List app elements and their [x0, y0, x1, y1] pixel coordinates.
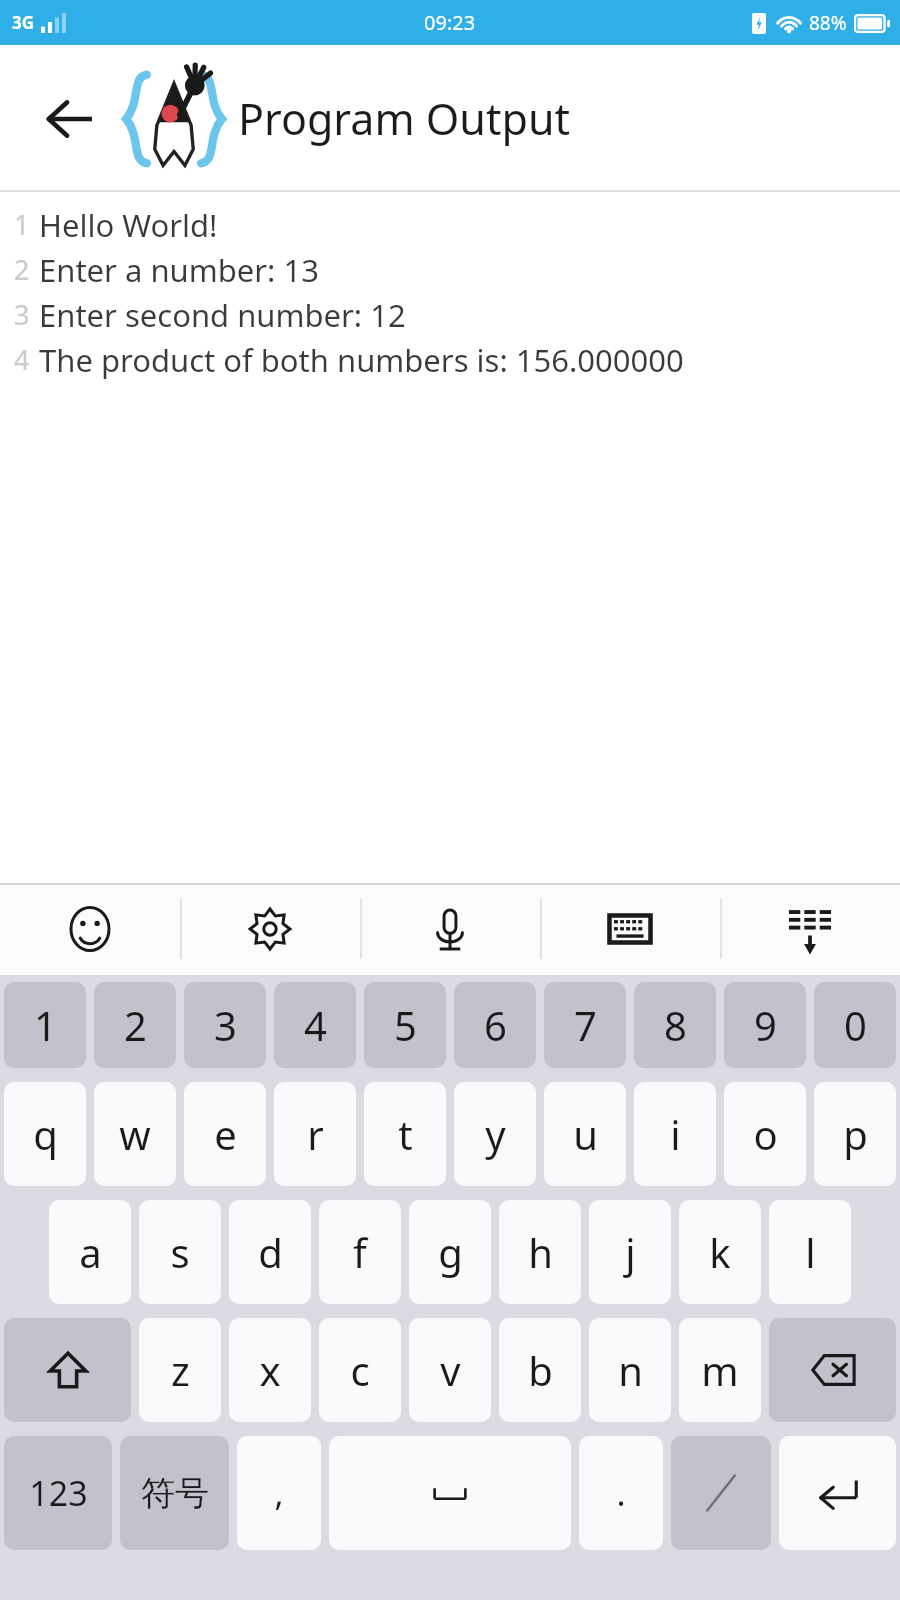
- button[interactable]: i: [634, 1082, 716, 1186]
- button[interactable]: n: [589, 1318, 671, 1422]
- button[interactable]: Backspace: [769, 1318, 896, 1422]
- button[interactable]: Keyboard: [540, 883, 720, 975]
- button[interactable]: Settings: [180, 883, 360, 975]
- staticText: 09:23: [424, 9, 476, 36]
- button[interactable]: Space: [329, 1436, 571, 1550]
- button[interactable]: u: [544, 1082, 626, 1186]
- button[interactable]: Back: [34, 84, 104, 154]
- staticText: i: [670, 1107, 681, 1161]
- button[interactable]: f: [319, 1200, 401, 1304]
- button[interactable]: 6: [454, 982, 536, 1068]
- staticText: f: [353, 1225, 367, 1279]
- staticText: k: [709, 1225, 731, 1279]
- button[interactable]: m: [679, 1318, 761, 1422]
- button[interactable]: 3: [184, 982, 266, 1068]
- staticText: 2: [14, 251, 30, 288]
- staticText: t: [398, 1107, 413, 1161]
- staticText: Hello World!: [39, 204, 218, 246]
- staticText: ,: [274, 1470, 284, 1516]
- button[interactable]: Voice input: [360, 883, 540, 975]
- staticText: u: [573, 1107, 598, 1161]
- button[interactable]: 0: [814, 982, 896, 1068]
- button[interactable]: h: [499, 1200, 581, 1304]
- staticText: r: [307, 1107, 324, 1161]
- staticText: q: [33, 1107, 58, 1161]
- button[interactable]: p: [814, 1082, 896, 1186]
- staticText: c: [350, 1343, 370, 1397]
- staticText: 4: [304, 998, 327, 1052]
- staticText: d: [258, 1225, 283, 1279]
- button[interactable]: 7: [544, 982, 626, 1068]
- staticText: v: [440, 1343, 461, 1397]
- staticText: l: [805, 1225, 816, 1279]
- button[interactable]: .: [579, 1436, 663, 1550]
- button[interactable]: o: [724, 1082, 806, 1186]
- staticText: b: [528, 1343, 553, 1397]
- staticText: g: [438, 1225, 463, 1279]
- staticText: 1: [34, 998, 57, 1052]
- staticText: n: [618, 1343, 643, 1397]
- button[interactable]: 5: [364, 982, 446, 1068]
- staticText: y: [485, 1107, 506, 1161]
- staticText: e: [214, 1107, 237, 1161]
- button[interactable]: y: [454, 1082, 536, 1186]
- button[interactable]: r: [274, 1082, 356, 1186]
- staticText: 8: [664, 998, 687, 1052]
- staticText: Enter a number: 13: [39, 249, 319, 291]
- staticText: 0: [844, 998, 867, 1052]
- button[interactable]: Hide keyboard: [720, 883, 900, 975]
- button[interactable]: t: [364, 1082, 446, 1186]
- staticText: 6: [484, 998, 507, 1052]
- button[interactable]: l: [769, 1200, 851, 1304]
- staticText: m: [701, 1343, 739, 1397]
- staticText: 1: [14, 206, 30, 243]
- button[interactable]: 8: [634, 982, 716, 1068]
- button[interactable]: s: [139, 1200, 221, 1304]
- staticText: Program Output: [238, 89, 571, 148]
- staticText: 88%: [809, 10, 847, 36]
- staticText: w: [119, 1107, 151, 1161]
- staticText: The product of both numbers is: 156.0000…: [39, 339, 684, 381]
- button[interactable]: a: [49, 1200, 131, 1304]
- button[interactable]: 4: [274, 982, 356, 1068]
- button[interactable]: 9: [724, 982, 806, 1068]
- button[interactable]: Enter: [779, 1436, 896, 1550]
- button[interactable]: x: [229, 1318, 311, 1422]
- staticText: 4: [14, 341, 30, 378]
- button[interactable]: c: [319, 1318, 401, 1422]
- staticText: p: [843, 1107, 868, 1161]
- button[interactable]: w: [94, 1082, 176, 1186]
- staticText: Enter second number: 12: [39, 294, 406, 336]
- button[interactable]: g: [409, 1200, 491, 1304]
- button[interactable]: q: [4, 1082, 86, 1186]
- button[interactable]: Emoji: [0, 883, 180, 975]
- staticText: 3: [14, 296, 30, 333]
- button[interactable]: Switch language: [671, 1436, 771, 1550]
- button[interactable]: e: [184, 1082, 266, 1186]
- button[interactable]: 符号: [120, 1436, 229, 1550]
- button[interactable]: b: [499, 1318, 581, 1422]
- button[interactable]: d: [229, 1200, 311, 1304]
- staticText: 7: [574, 998, 597, 1052]
- staticText: x: [259, 1343, 281, 1397]
- staticText: 2: [124, 998, 147, 1052]
- button[interactable]: k: [679, 1200, 761, 1304]
- staticText: 123: [29, 1470, 88, 1516]
- button[interactable]: z: [139, 1318, 221, 1422]
- staticText: o: [753, 1107, 778, 1161]
- staticText: j: [625, 1225, 636, 1279]
- staticText: 3G: [12, 11, 35, 34]
- button[interactable]: 123: [4, 1436, 112, 1550]
- staticText: z: [171, 1343, 190, 1397]
- button[interactable]: 1: [4, 982, 86, 1068]
- staticText: 符号: [141, 1472, 209, 1515]
- button[interactable]: j: [589, 1200, 671, 1304]
- staticText: a: [79, 1225, 102, 1279]
- staticText: s: [170, 1225, 190, 1279]
- staticText: h: [528, 1225, 553, 1279]
- button[interactable]: ,: [237, 1436, 321, 1550]
- button[interactable]: 2: [94, 982, 176, 1068]
- button[interactable]: v: [409, 1318, 491, 1422]
- staticText: 5: [394, 998, 417, 1052]
- button[interactable]: Shift: [4, 1318, 131, 1422]
